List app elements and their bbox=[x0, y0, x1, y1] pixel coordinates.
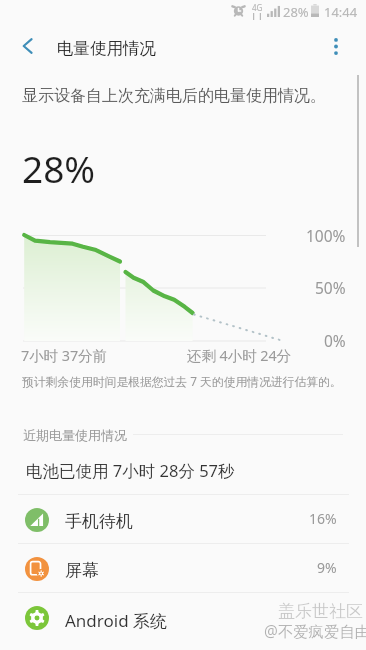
staticText: 50% bbox=[315, 277, 346, 298]
button[interactable]: 屏幕 bbox=[0, 543, 366, 592]
staticText: 电池已使用 7小时 28分 57秒 bbox=[26, 459, 235, 482]
staticText: 显示设备自上次充满电后的电量使用情况。 bbox=[22, 86, 326, 106]
staticText: Android 系统 bbox=[65, 609, 168, 632]
staticText: 4G bbox=[252, 2, 263, 13]
button[interactable]: Android 系统 bbox=[0, 592, 366, 641]
staticText: 屏幕 bbox=[65, 560, 99, 581]
staticText: 100% bbox=[306, 225, 346, 246]
staticText: 盖乐世社区 bbox=[278, 601, 363, 622]
staticText: 28% bbox=[22, 143, 96, 193]
staticText: 16% bbox=[309, 509, 337, 528]
staticText: 7小时 37分前 bbox=[21, 346, 107, 366]
staticText: 14:44 bbox=[324, 3, 358, 21]
staticText: 28% bbox=[283, 3, 309, 21]
staticText: @不爱疯爱自由 bbox=[264, 621, 366, 642]
staticText: 9% bbox=[317, 558, 337, 577]
staticText: 0% bbox=[324, 330, 346, 351]
staticText: 预计剩余使用时间是根据您过去 7 天的使用情况进行估算的。 bbox=[22, 373, 342, 389]
staticText: 手机待机 bbox=[65, 511, 133, 532]
staticText: 电量使用情况 bbox=[57, 38, 156, 59]
staticText: 还剩 4小时 24分 bbox=[187, 346, 292, 366]
button[interactable]: 手机待机 bbox=[0, 494, 366, 543]
button[interactable]: More options bbox=[316, 26, 356, 66]
staticText: 近期电量使用情况 bbox=[23, 427, 127, 443]
button[interactable]: Back bbox=[8, 26, 48, 66]
